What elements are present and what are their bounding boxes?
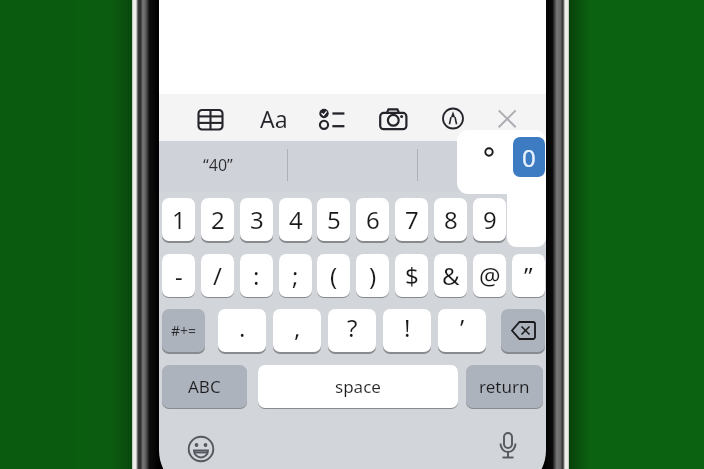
button[interactable] xyxy=(437,103,469,135)
button[interactable]: 7 xyxy=(395,198,428,241)
button[interactable]: . xyxy=(218,309,266,352)
staticText: ” xyxy=(524,259,533,292)
staticText: 0 xyxy=(522,141,536,174)
staticText: 1 xyxy=(172,203,186,236)
staticText: . xyxy=(239,311,246,344)
staticText: ) xyxy=(369,259,377,292)
button[interactable]: ; xyxy=(279,254,312,297)
staticText: ? xyxy=(347,311,358,344)
button[interactable] xyxy=(491,101,523,133)
staticText: 8 xyxy=(444,203,458,236)
staticText: space xyxy=(335,375,381,398)
button[interactable]: “40” xyxy=(203,154,233,176)
button[interactable]: ABC xyxy=(162,365,247,408)
button[interactable]: #+= xyxy=(162,309,205,352)
staticText: & xyxy=(442,259,460,292)
button[interactable]: ” xyxy=(512,254,545,297)
staticText: @ xyxy=(479,259,501,292)
staticText: ’ xyxy=(460,311,465,344)
button[interactable]: return xyxy=(466,365,543,408)
staticText: 3 xyxy=(250,203,264,236)
staticText: 9 xyxy=(483,203,497,236)
button[interactable] xyxy=(196,103,228,135)
button[interactable]: / xyxy=(201,254,234,297)
staticText: return xyxy=(479,375,530,398)
staticText: ! xyxy=(404,311,411,344)
button[interactable]: 2 xyxy=(201,198,234,241)
staticText: / xyxy=(213,259,222,292)
button[interactable]: ’ xyxy=(438,309,486,352)
staticText: : xyxy=(253,259,260,292)
button[interactable]: 0 xyxy=(513,137,545,177)
button[interactable]: 4 xyxy=(279,198,312,241)
staticText: 4 xyxy=(289,203,303,236)
staticText: ABC xyxy=(188,375,221,398)
button[interactable]: 1 xyxy=(162,198,195,241)
staticText: $ xyxy=(405,259,419,292)
staticText: , xyxy=(294,311,301,344)
button[interactable] xyxy=(501,309,545,352)
staticText: #+= xyxy=(171,321,197,340)
staticText: ; xyxy=(292,259,299,292)
button[interactable]: $ xyxy=(395,254,428,297)
button[interactable]: 3 xyxy=(240,198,273,241)
staticText: - xyxy=(175,259,183,292)
button[interactable]: @ xyxy=(473,254,506,297)
button[interactable]: , xyxy=(273,309,321,352)
button[interactable] xyxy=(316,103,348,135)
staticText: 5 xyxy=(327,203,341,236)
staticText: ( xyxy=(330,259,338,292)
button[interactable]: ! xyxy=(383,309,431,352)
button[interactable] xyxy=(492,430,524,464)
button[interactable]: ) xyxy=(356,254,389,297)
staticText: 7 xyxy=(405,203,419,236)
button[interactable]: 8 xyxy=(434,198,467,241)
staticText: 2 xyxy=(211,203,225,236)
button[interactable] xyxy=(377,103,409,135)
button[interactable]: Aa xyxy=(257,102,290,135)
button[interactable]: - xyxy=(162,254,195,297)
button[interactable]: ? xyxy=(328,309,376,352)
button[interactable] xyxy=(475,138,503,166)
button[interactable]: 9 xyxy=(473,198,506,241)
button[interactable]: : xyxy=(240,254,273,297)
button[interactable]: & xyxy=(434,254,467,297)
button[interactable]: 5 xyxy=(317,198,350,241)
button[interactable] xyxy=(185,433,217,465)
staticText: 6 xyxy=(366,203,380,236)
button[interactable]: space xyxy=(258,365,458,408)
button[interactable]: 6 xyxy=(356,198,389,241)
button[interactable]: ( xyxy=(317,254,350,297)
staticText: Aa xyxy=(260,103,288,134)
